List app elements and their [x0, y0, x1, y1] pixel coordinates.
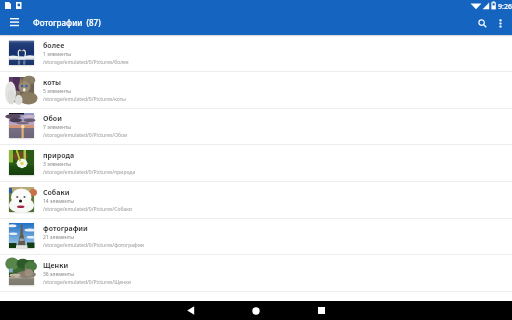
staticText: 21 элементы: [43, 234, 74, 241]
button[interactable]: более: [0, 35, 512, 72]
staticText: фотографии: [43, 224, 88, 234]
staticText: /storage/emulated/0/Pictures/Щенки: [43, 279, 131, 286]
staticText: 3 элементы: [43, 161, 72, 168]
staticText: /storage/emulated/0/Pictures/природа: [43, 169, 136, 176]
staticText: Фотографии (87): [33, 17, 101, 28]
button[interactable]: коты: [0, 72, 512, 109]
button[interactable]: Search: [471, 12, 493, 34]
button[interactable]: природа: [0, 145, 512, 182]
staticText: /storage/emulated/0/Pictures/коты: [43, 96, 126, 103]
staticText: 7 элементы: [43, 124, 72, 131]
staticText: 14 элементы: [43, 198, 74, 205]
button[interactable]: Собаки: [0, 182, 512, 219]
staticText: Обои: [43, 114, 62, 124]
staticText: 1 элементы: [43, 51, 72, 58]
staticText: 5 элементы: [43, 88, 72, 95]
staticText: /storage/emulated/0/Pictures/Обои: [43, 132, 128, 139]
staticText: коты: [43, 78, 61, 88]
staticText: /storage/emulated/0/Pictures/более: [43, 59, 129, 66]
staticText: природа: [43, 151, 75, 161]
staticText: /storage/emulated/0/Pictures/Собаки: [43, 206, 132, 213]
staticText: 36 элементы: [43, 271, 74, 278]
button[interactable]: Обои: [0, 108, 512, 145]
staticText: 9:26: [498, 2, 512, 12]
button[interactable]: Щенки: [0, 255, 512, 292]
button[interactable]: Open navigation drawer: [3, 11, 25, 33]
staticText: Собаки: [43, 188, 70, 198]
staticText: Щенки: [43, 261, 69, 271]
button[interactable]: Back: [178, 301, 204, 320]
button[interactable]: More options: [489, 12, 511, 34]
staticText: /storage/emulated/0/Pictures/фотографии: [43, 242, 144, 249]
button[interactable]: Recent apps: [308, 301, 334, 320]
staticText: более: [43, 41, 65, 51]
button[interactable]: Home: [243, 301, 269, 320]
button[interactable]: фотографии: [0, 218, 512, 255]
